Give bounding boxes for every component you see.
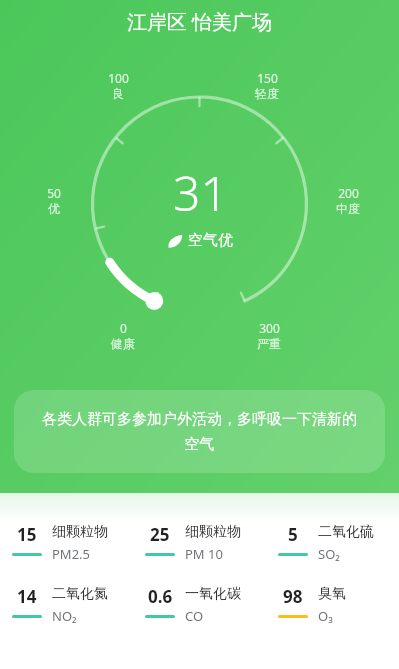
staticText: PM2.5 [52,545,91,563]
staticText: 二氧化氮 [52,585,108,603]
staticText: 二氧化硫 [318,523,374,541]
staticText: 优 [48,201,60,216]
button[interactable]: 98 [266,585,399,625]
staticText: 25 [150,523,170,546]
staticText: 300 [259,320,280,336]
staticText: 200 [338,185,359,201]
staticText: 一氧化碳 [185,585,241,603]
button[interactable]: 14 [0,585,133,625]
staticText: CO [185,607,204,625]
staticText: 臭氧 [318,585,346,603]
staticText: NO₂ [52,607,77,625]
staticText: 轻度 [255,86,279,101]
staticText: 严重 [257,336,281,351]
staticText: 100 [108,70,129,86]
staticText: 14 [17,585,37,608]
staticText: 5 [288,523,298,546]
button[interactable]: 25 [133,523,266,563]
staticText: 0 [120,320,127,336]
staticText: PM 10 [185,545,223,563]
staticText: 空气优 [188,231,233,250]
staticText: 细颗粒物 [185,523,241,541]
staticText: 98 [283,585,303,608]
staticText: 良 [112,86,124,101]
button[interactable]: 15 [0,523,133,563]
button[interactable]: 0.6 [133,585,266,625]
staticText: 15 [17,523,37,546]
staticText: 31 [173,160,228,225]
staticText: 50 [47,185,61,201]
staticText: 0.6 [148,585,173,608]
staticText: 各类人群可多参加户外活动，多呼吸一下清新的空气 [36,410,363,453]
staticText: 健康 [111,336,135,351]
staticText: 细颗粒物 [52,523,108,541]
button[interactable]: 江岸区 怡美广场 [0,8,399,35]
button[interactable]: 各类人群可多参加户外活动，多呼吸一下清新的空气 [14,390,385,473]
staticText: SO₂ [318,545,340,563]
staticText: O₃ [318,607,333,625]
button[interactable]: 5 [266,523,399,563]
staticText: 150 [257,70,278,86]
staticText: 中度 [336,201,360,216]
